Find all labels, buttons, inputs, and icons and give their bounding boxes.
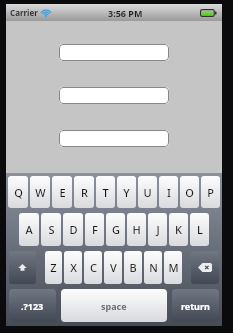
button[interactable]: E: [52, 176, 72, 208]
staticText: F: [92, 222, 98, 237]
button[interactable]: G: [106, 213, 125, 246]
staticText: Y: [123, 185, 130, 200]
staticText: E: [59, 185, 66, 200]
staticText: Z: [50, 260, 57, 275]
button[interactable]: O: [180, 176, 199, 208]
staticText: P: [207, 185, 214, 200]
staticText: 3:56 PM: [108, 7, 143, 19]
button[interactable]: S: [41, 213, 61, 246]
button[interactable]: Z: [45, 251, 62, 284]
button[interactable]: Delete: [191, 251, 219, 284]
button[interactable]: I: [159, 176, 178, 208]
staticText: space: [101, 300, 127, 312]
staticText: X: [70, 260, 77, 275]
button[interactable]: T: [96, 176, 115, 208]
staticText: I: [167, 185, 171, 200]
button[interactable]: N: [144, 251, 162, 284]
button[interactable]: X: [64, 251, 82, 284]
staticText: B: [129, 260, 137, 275]
staticText: W: [35, 185, 46, 200]
button[interactable]: Q: [8, 176, 28, 208]
button[interactable]: .?123: [9, 289, 56, 322]
staticText: Carrier: [10, 7, 38, 18]
staticText: V: [110, 260, 117, 275]
button[interactable]: F: [85, 213, 104, 246]
staticText: Q: [14, 185, 23, 200]
button[interactable]: U: [138, 176, 157, 208]
staticText: N: [149, 260, 158, 275]
button[interactable]: Shift: [9, 251, 36, 284]
button[interactable]: M: [164, 251, 182, 284]
button[interactable]: K: [169, 213, 188, 246]
button[interactable]: H: [127, 213, 146, 246]
button[interactable]: A: [19, 213, 39, 246]
staticText: M: [168, 260, 179, 275]
button[interactable]: [59, 87, 169, 104]
staticText: O: [185, 185, 194, 200]
staticText: H: [132, 222, 141, 237]
button[interactable]: return: [172, 289, 219, 322]
button[interactable]: [59, 44, 169, 61]
staticText: .?123: [21, 300, 44, 312]
staticText: return: [181, 300, 210, 312]
staticText: T: [102, 185, 109, 200]
staticText: L: [197, 222, 203, 237]
button[interactable]: B: [124, 251, 142, 284]
button[interactable]: [59, 130, 169, 147]
staticText: S: [48, 222, 55, 237]
staticText: R: [81, 185, 88, 200]
button[interactable]: R: [74, 176, 94, 208]
staticText: U: [143, 185, 152, 200]
button[interactable]: L: [190, 213, 209, 246]
staticText: J: [156, 222, 160, 237]
staticText: D: [69, 222, 78, 237]
staticText: C: [90, 260, 97, 275]
button[interactable]: V: [104, 251, 122, 284]
staticText: K: [175, 222, 182, 237]
button[interactable]: W: [30, 176, 50, 208]
button[interactable]: space: [61, 289, 167, 322]
button[interactable]: J: [148, 213, 167, 246]
button[interactable]: Y: [117, 176, 136, 208]
staticText: G: [112, 222, 120, 237]
button[interactable]: C: [84, 251, 102, 284]
button[interactable]: D: [63, 213, 83, 246]
staticText: A: [25, 222, 33, 237]
button[interactable]: P: [201, 176, 220, 208]
